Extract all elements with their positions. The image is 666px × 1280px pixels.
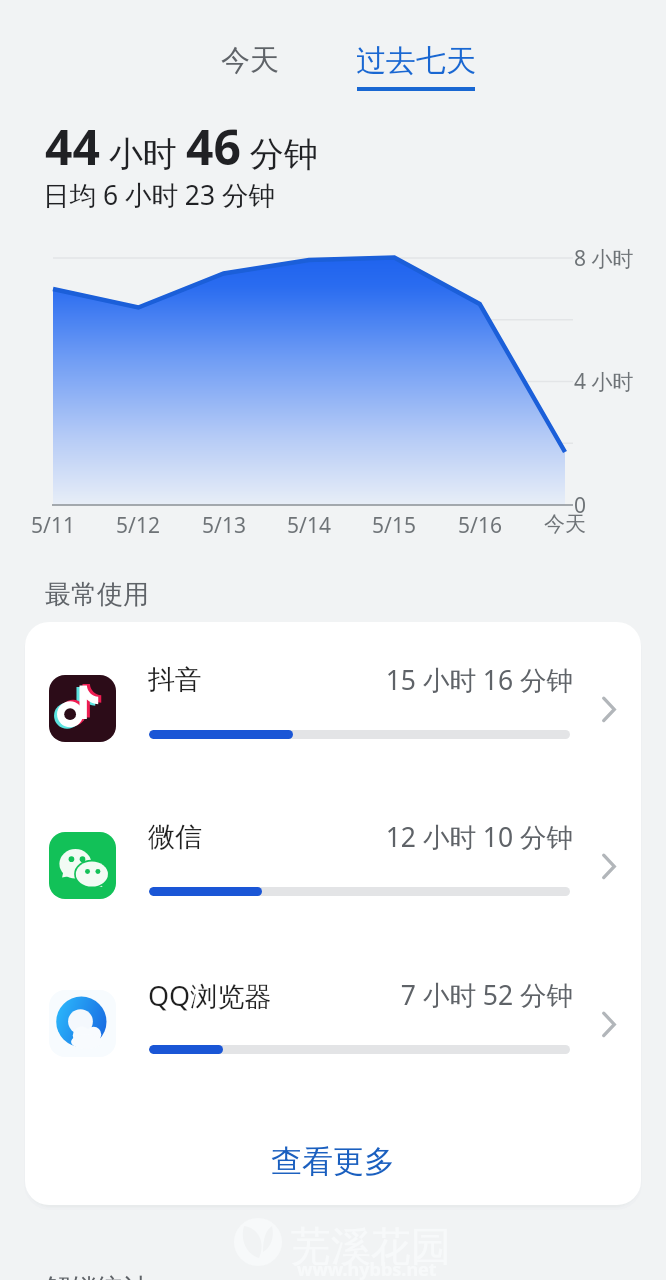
staticText: 查看更多 xyxy=(271,1142,395,1181)
staticText: 5/15 xyxy=(372,511,416,540)
button[interactable]: 过去七天 xyxy=(336,14,496,94)
staticText: 5/14 xyxy=(287,511,331,540)
other: View app usage details xyxy=(576,677,641,743)
staticText: QQ浏览器 xyxy=(148,977,272,1014)
button[interactable]: 微信 xyxy=(25,800,641,935)
staticText: 今天 xyxy=(221,42,279,79)
staticText: 8 小时 xyxy=(574,244,634,273)
staticText: 44 xyxy=(45,114,100,179)
staticText: 日均 6 小时 23 分钟 xyxy=(43,177,276,213)
staticText: 解锁统计 xyxy=(45,1272,149,1280)
staticText: 12 小时 10 分钟 xyxy=(385,819,573,855)
staticText: 微信 xyxy=(148,820,202,854)
staticText: 15 小时 16 分钟 xyxy=(385,662,573,698)
staticText: 5/11 xyxy=(31,511,75,540)
staticText: 最常使用 xyxy=(45,578,149,611)
staticText: 46 xyxy=(186,114,241,179)
staticText: 4 小时 xyxy=(574,367,634,396)
staticText: 分钟 xyxy=(241,130,318,176)
staticText: 今天 xyxy=(544,511,586,537)
staticText: 5/16 xyxy=(458,511,502,540)
staticText: 5/13 xyxy=(202,511,246,540)
button[interactable]: QQ浏览器 xyxy=(25,958,641,1093)
staticText: 抖音 xyxy=(148,663,202,697)
other: View app usage details xyxy=(576,834,641,900)
button[interactable]: 抖音 xyxy=(25,643,641,778)
staticText: 过去七天 xyxy=(356,42,476,80)
staticText: 小时 xyxy=(100,130,186,176)
button[interactable]: 今天 xyxy=(179,20,321,100)
button[interactable]: 查看更多 xyxy=(25,1118,641,1205)
staticText: 7 小时 52 分钟 xyxy=(400,977,573,1013)
staticText: 5/12 xyxy=(116,511,160,540)
staticText: 0 xyxy=(574,491,587,520)
other: View app usage details xyxy=(576,992,641,1058)
